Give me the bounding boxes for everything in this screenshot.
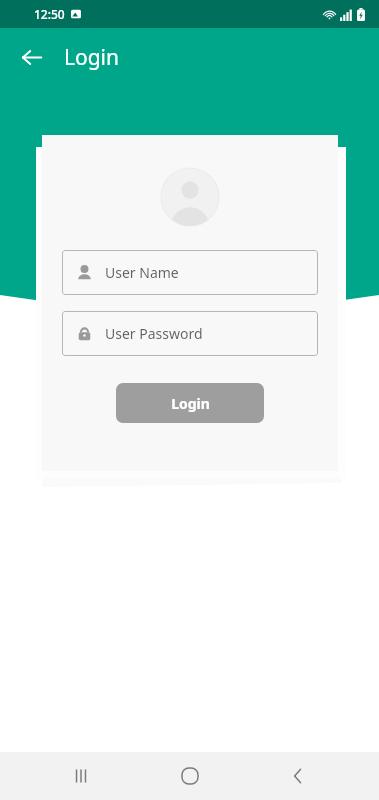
button[interactable]: Home: [162, 752, 218, 800]
staticText: User Password: [105, 324, 203, 343]
staticText: Login: [64, 43, 120, 72]
button[interactable]: Back: [270, 752, 326, 800]
button[interactable]: Login: [116, 383, 264, 423]
button[interactable]: User Name: [62, 250, 318, 295]
button[interactable]: Recents: [53, 752, 109, 800]
button[interactable]: User Password: [62, 311, 318, 356]
staticText: User Name: [105, 263, 179, 282]
staticText: 12:50: [34, 6, 65, 22]
staticText: Login: [171, 394, 210, 413]
button[interactable]: Back: [9, 35, 53, 79]
